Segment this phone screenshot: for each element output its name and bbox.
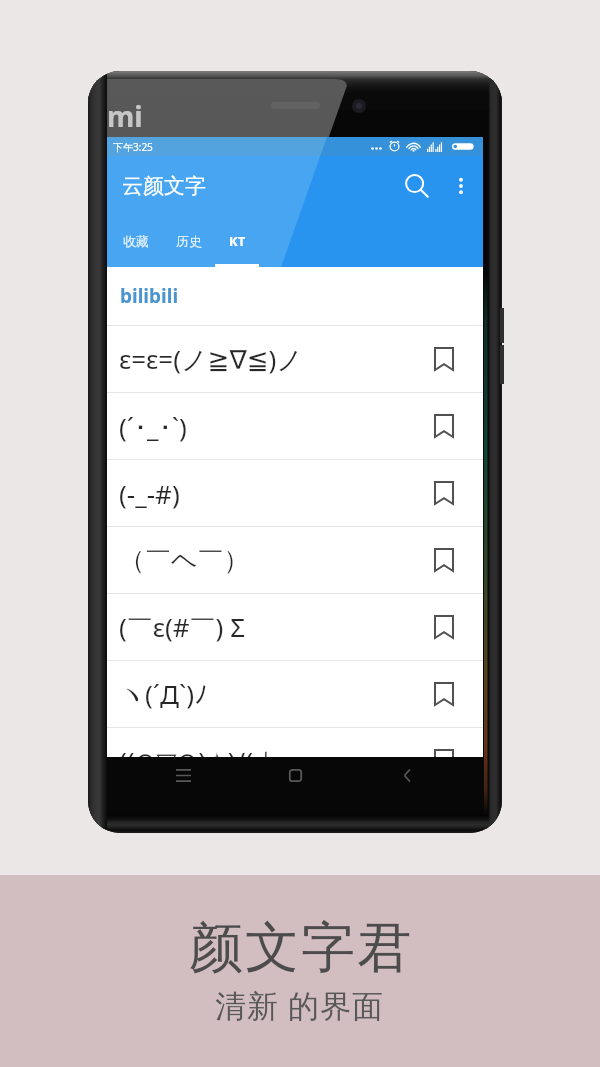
button[interactable]: 历史 <box>162 215 215 267</box>
staticText: mi <box>107 97 143 135</box>
staticText: (´･_･`) <box>119 409 187 444</box>
staticText: 历史 <box>176 233 202 249</box>
button[interactable]: Bookmark <box>427 744 461 757</box>
staticText: 清新 的界面 <box>215 984 385 1026</box>
button[interactable]: KT <box>215 215 259 267</box>
button[interactable]: Search <box>398 167 436 205</box>
staticText: KT <box>229 232 246 250</box>
staticText: 收藏 <box>123 233 149 249</box>
staticText: ε=ε=(ノ≧∇≦)ノ <box>119 341 303 377</box>
button[interactable]: Bookmark <box>427 409 461 443</box>
button[interactable]: Bookmark <box>427 476 461 510</box>
button[interactable]: More options <box>444 169 478 203</box>
button[interactable]: Bookmark <box>427 543 461 577</box>
staticText: ((⊙▽⊙)✧)/(｜ <box>119 743 279 757</box>
button[interactable]: ヽ(´Д`)ﾉ <box>107 661 483 727</box>
button[interactable]: Menu <box>166 758 200 792</box>
button[interactable]: Bookmark <box>427 677 461 711</box>
staticText: ヽ(´Д`)ﾉ <box>119 676 208 712</box>
staticText: (-_-#) <box>119 476 180 511</box>
staticText: 颜文字君 <box>188 914 412 982</box>
button[interactable]: (´･_･`) <box>107 393 483 459</box>
button[interactable]: Back <box>390 758 424 792</box>
staticText: （￣ヘ￣） <box>119 544 250 577</box>
button[interactable]: Bookmark <box>427 342 461 376</box>
button[interactable]: ((⊙▽⊙)✧)/(｜ <box>107 728 483 757</box>
staticText: 云颜文字 <box>122 173 206 199</box>
button[interactable]: 收藏 <box>109 215 162 267</box>
button[interactable]: Home <box>278 758 312 792</box>
staticText: bilibili <box>120 283 179 309</box>
staticText: (￣ε(#￣) Σ <box>119 609 246 645</box>
button[interactable]: (-_-#) <box>107 460 483 526</box>
staticText: 下午3:25 <box>113 140 153 154</box>
button[interactable]: ε=ε=(ノ≧∇≦)ノ <box>107 326 483 392</box>
button[interactable]: (￣ε(#￣) Σ <box>107 594 483 660</box>
button[interactable]: Bookmark <box>427 610 461 644</box>
button[interactable]: （￣ヘ￣） <box>107 527 483 593</box>
